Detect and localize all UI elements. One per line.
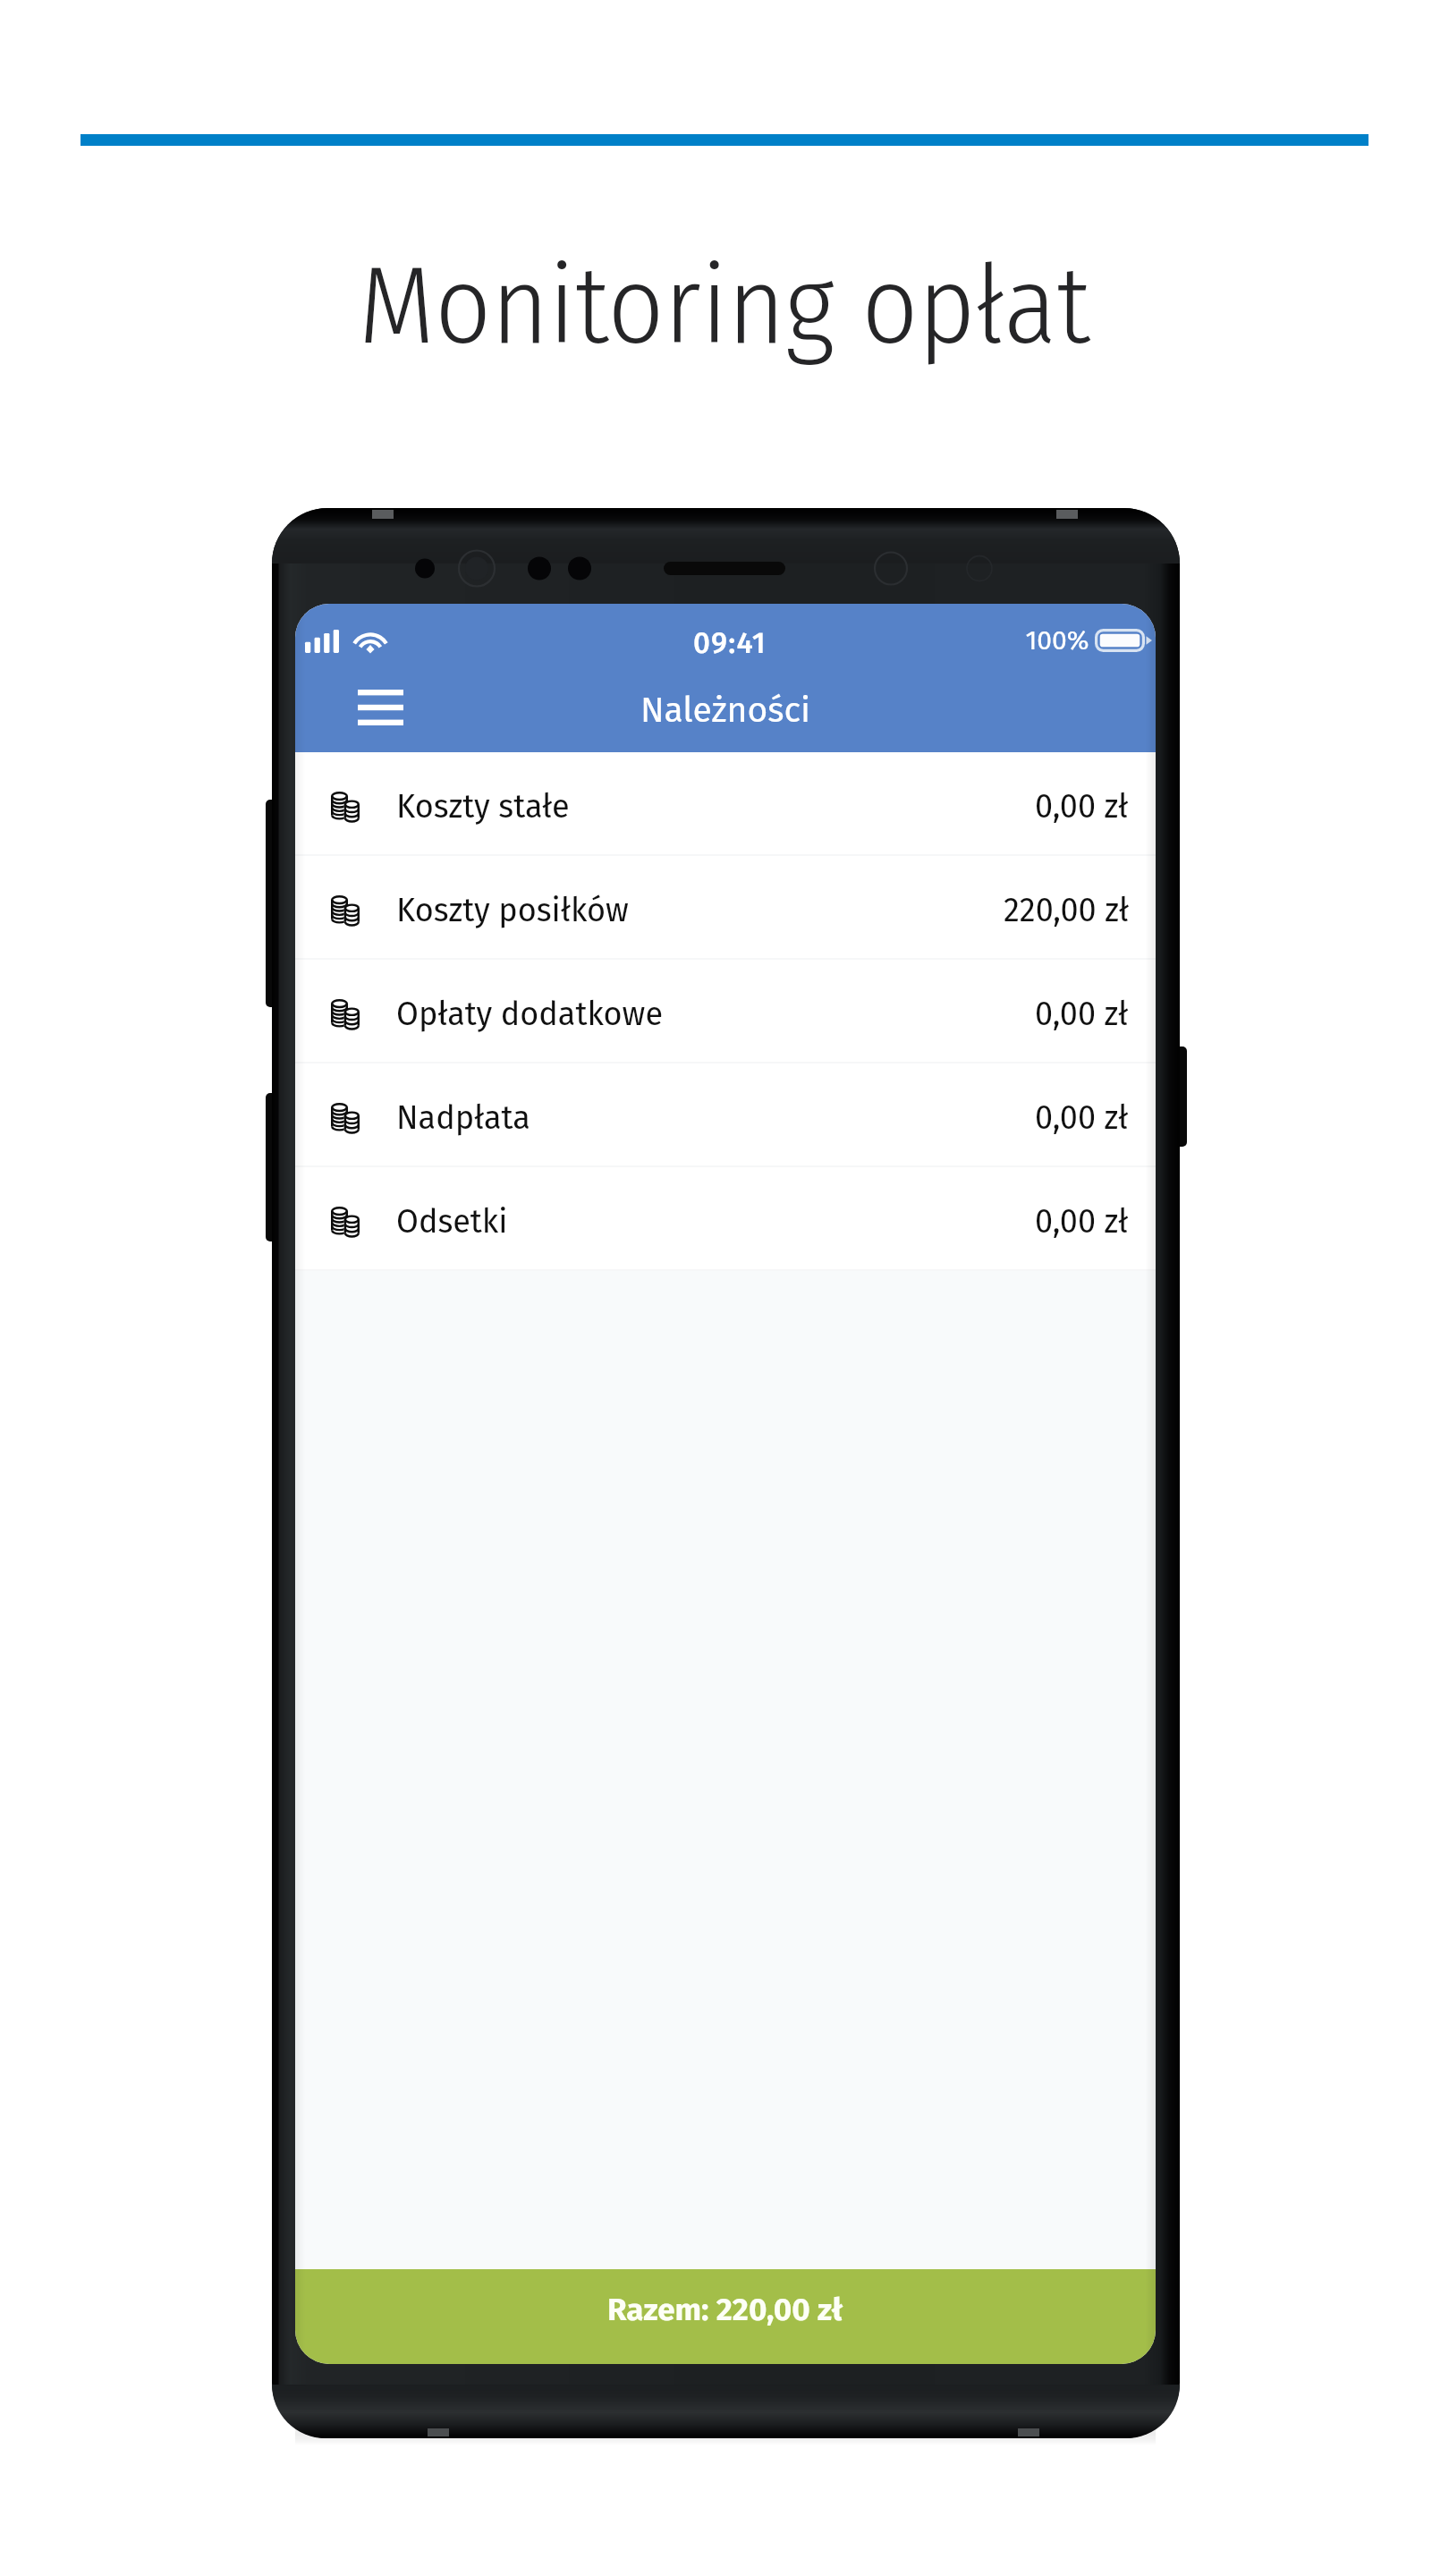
staticText: Należności xyxy=(295,690,1156,732)
staticText: Koszty posiłków xyxy=(396,891,629,929)
staticText: Monitoring opłat xyxy=(0,241,1449,371)
staticText: 0,00 zł xyxy=(1035,1202,1129,1241)
button[interactable]: Odsetki xyxy=(295,1167,1156,1269)
button[interactable]: Nadpłata xyxy=(295,1063,1156,1165)
staticText: 220,00 zł xyxy=(1004,891,1129,929)
staticText: 0,00 zł xyxy=(1035,995,1129,1033)
staticText: 0,00 zł xyxy=(1035,787,1129,826)
button[interactable]: Koszty stałe xyxy=(295,752,1156,854)
staticText: Koszty stałe xyxy=(396,787,570,826)
staticText: 09:41 xyxy=(689,625,771,661)
button[interactable]: Koszty posiłków xyxy=(295,856,1156,958)
staticText: Razem: 220,00 zł xyxy=(607,2291,843,2328)
staticText: Nadpłata xyxy=(396,1098,530,1137)
button[interactable]: Opłaty dodatkowe xyxy=(295,960,1156,1062)
button[interactable]: Razem: 220,00 zł xyxy=(295,2269,1156,2364)
staticText: Odsetki xyxy=(396,1202,508,1241)
button[interactable]: Open navigation menu xyxy=(337,679,424,736)
staticText: Opłaty dodatkowe xyxy=(396,995,664,1033)
staticText: 100% xyxy=(1021,624,1093,657)
staticText: 0,00 zł xyxy=(1035,1098,1129,1137)
